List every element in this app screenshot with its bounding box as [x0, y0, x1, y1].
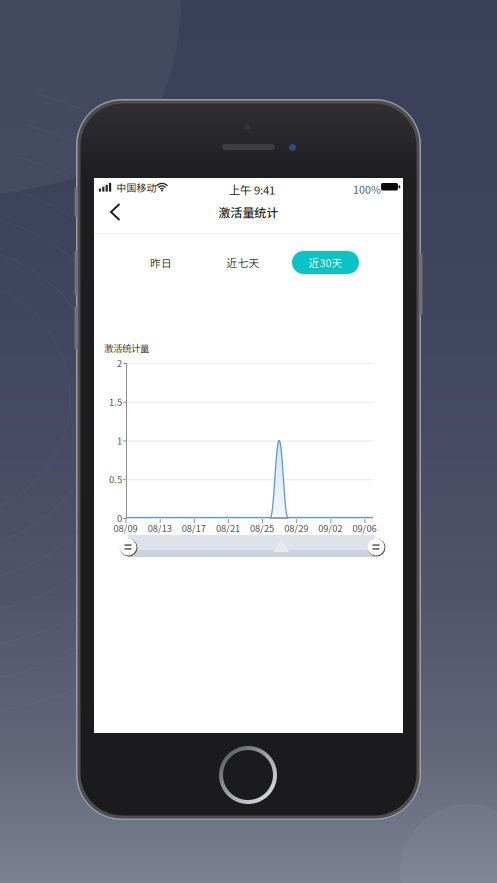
staticText: 08/17: [182, 521, 206, 535]
button[interactable]: Back: [99, 196, 131, 228]
staticText: 0: [117, 511, 122, 525]
staticText: 激活量统计: [218, 203, 278, 221]
staticText: 中国移动: [116, 180, 156, 194]
staticText: 昨日: [150, 255, 172, 270]
staticText: 08/25: [250, 521, 274, 535]
staticText: 上午 9:41: [229, 181, 275, 198]
staticText: 激活统计量: [104, 341, 149, 354]
button[interactable]: 昨日: [130, 251, 192, 274]
staticText: 2: [117, 356, 122, 370]
staticText: 1: [117, 434, 122, 447]
button[interactable]: Range start: [119, 538, 137, 556]
staticText: 09/06: [352, 521, 376, 535]
staticText: 近30天: [308, 255, 342, 270]
staticText: 1.5: [109, 395, 122, 408]
button[interactable]: 近30天: [292, 251, 359, 274]
staticText: 100%: [353, 181, 381, 197]
staticText: 08/29: [284, 521, 308, 535]
staticText: 08/09: [113, 521, 137, 535]
staticText: 08/21: [216, 521, 240, 535]
button[interactable]: 近七天: [212, 251, 274, 274]
staticText: 近七天: [226, 255, 259, 270]
staticText: 08/13: [148, 521, 172, 535]
staticText: 09/02: [318, 521, 342, 535]
staticText: 0.5: [109, 472, 122, 486]
button[interactable]: Range end: [367, 538, 385, 556]
